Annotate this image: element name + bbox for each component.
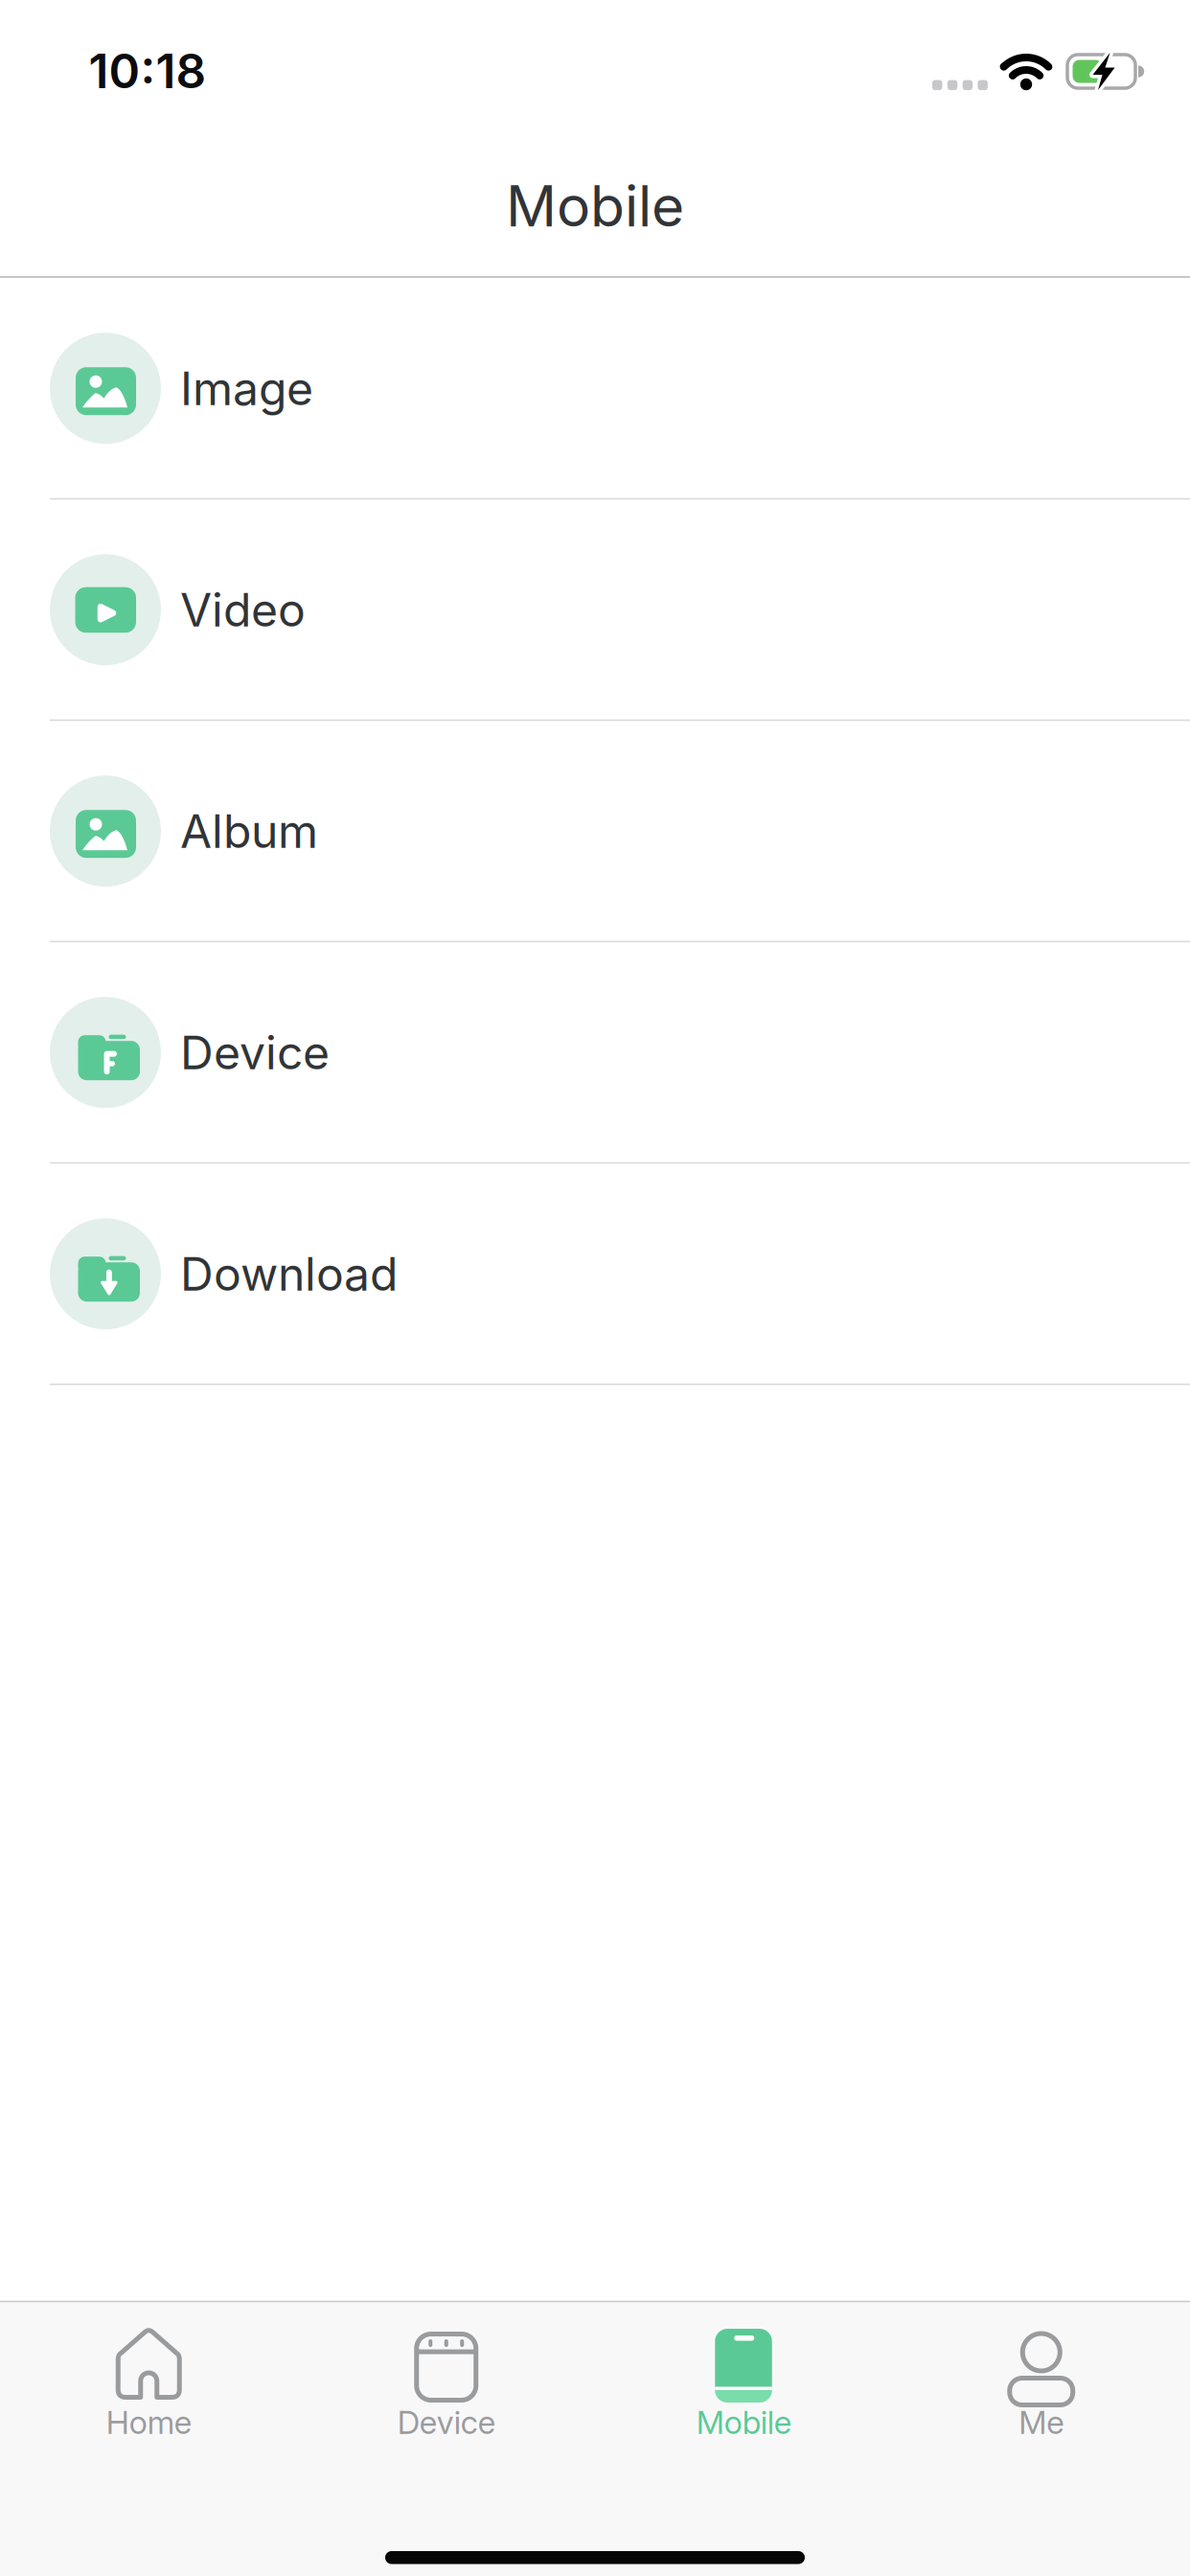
staticText: Mobile [696,2403,791,2441]
staticText: Home [106,2403,191,2441]
button[interactable]: Device [303,2300,590,2450]
staticText: Image [180,361,313,415]
button[interactable]: Device [0,943,1190,1162]
staticText: Download [180,1247,398,1301]
button[interactable]: Download [0,1164,1190,1384]
button[interactable]: Home [5,2300,292,2450]
staticText: 10:18 [89,43,206,99]
staticText: Me [1019,2403,1064,2441]
button[interactable]: Video [0,500,1190,720]
button[interactable]: Mobile [600,2300,887,2450]
staticText: Album [180,804,318,858]
button[interactable]: Album [0,721,1190,941]
staticText: Video [180,583,306,637]
button[interactable]: Image [0,278,1190,498]
button[interactable]: Me [898,2300,1185,2450]
staticText: Device [180,1025,330,1080]
staticText: Device [397,2403,495,2441]
staticText: Mobile [506,173,684,239]
